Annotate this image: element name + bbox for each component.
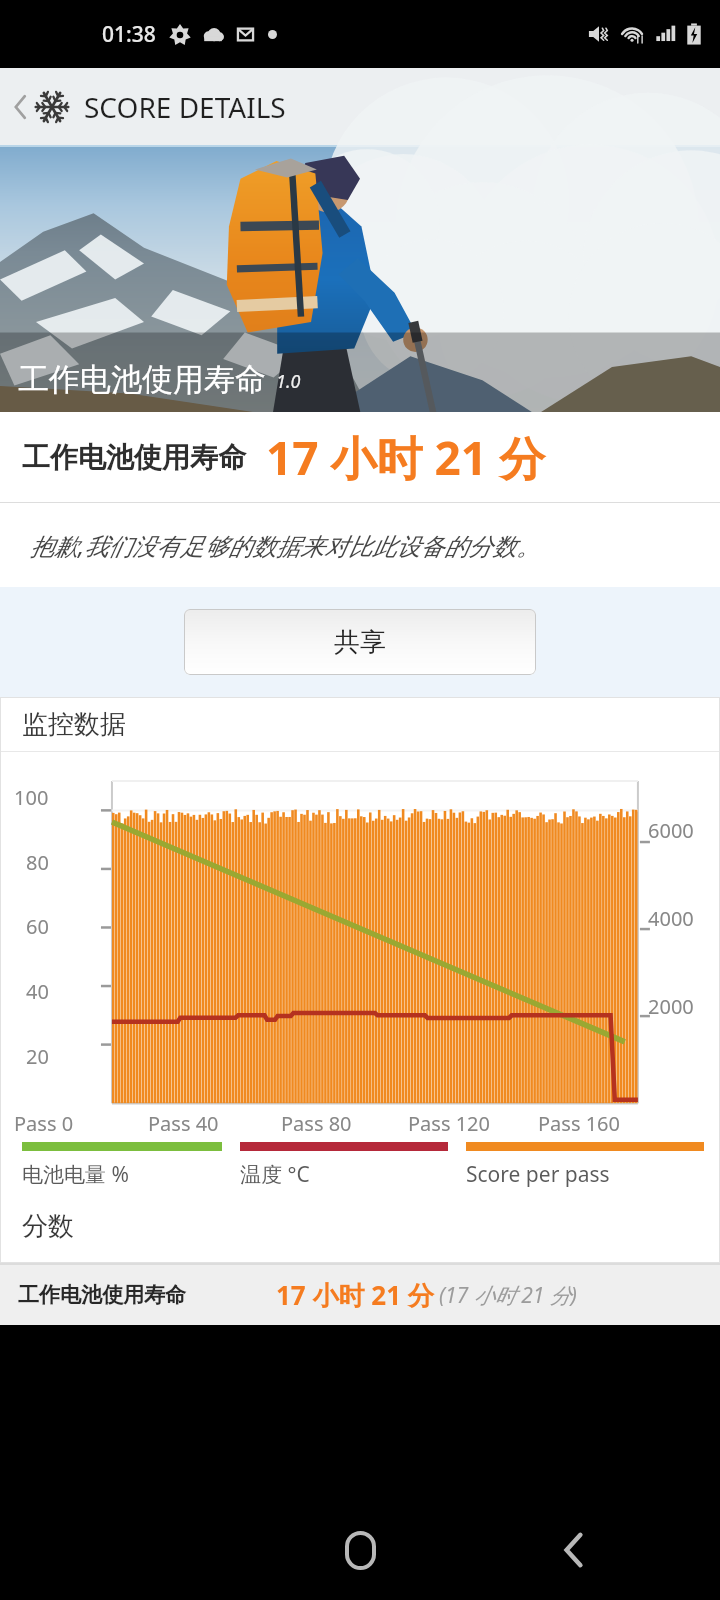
staticText: Pass 120 (408, 1110, 490, 1137)
staticText: Pass 40 (148, 1110, 219, 1137)
button[interactable]: Back (4, 82, 294, 132)
staticText: 01:38 (102, 20, 156, 49)
staticText: Score per pass (466, 1160, 610, 1189)
staticText: 6000 (648, 817, 694, 844)
staticText: 温度 °C (240, 1160, 310, 1189)
staticText: 17 小时 21 分 (266, 426, 546, 489)
staticText: 1.0 (276, 369, 301, 394)
staticText: 40 (26, 978, 49, 1005)
staticText: 60 (26, 913, 49, 940)
staticText: 17 小时 21 分 (276, 1277, 434, 1313)
staticText: 4000 (648, 905, 694, 932)
staticText: SCORE DETAILS (84, 88, 286, 126)
staticText: 2000 (648, 993, 694, 1020)
button[interactable]: 共享 (184, 609, 536, 675)
staticText: Pass 80 (281, 1110, 352, 1137)
staticText: 抱歉,我们没有足够的数据来对比此设备的分数。 (30, 529, 541, 562)
staticText: (17 小时 21 分) (439, 1281, 577, 1310)
staticText: 20 (26, 1043, 49, 1070)
button[interactable]: 工作电池使用寿命 (0, 1265, 720, 1325)
staticText: 工作电池使用寿命 (18, 1282, 186, 1308)
staticText: 监控数据 (22, 708, 126, 741)
button[interactable]: Home (323, 1513, 397, 1587)
staticText: 分数 (22, 1210, 74, 1243)
staticText: Pass 0 (14, 1110, 74, 1137)
staticText: 电池电量 % (22, 1160, 129, 1189)
staticText: 共享 (334, 626, 386, 659)
staticText: 100 (14, 784, 49, 811)
staticText: 80 (26, 849, 49, 876)
staticText: 工作电池使用寿命 (22, 440, 246, 475)
staticText: Pass 160 (538, 1110, 620, 1137)
button[interactable]: Back (536, 1513, 610, 1587)
staticText: 工作电池使用寿命 (18, 360, 266, 399)
